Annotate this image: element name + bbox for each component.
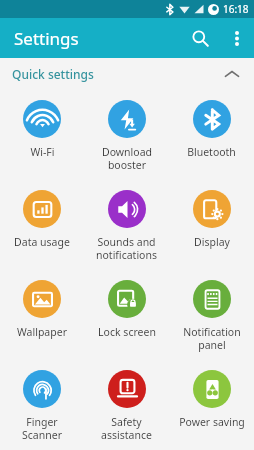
staticText: Display	[194, 235, 230, 249]
staticText: Settings	[14, 27, 79, 50]
staticText: Quick settings	[12, 66, 94, 82]
staticText: 16:18	[223, 2, 249, 16]
button[interactable]: More options	[220, 21, 254, 55]
button[interactable]: Data usage	[0, 180, 84, 270]
staticText: Notification panel	[183, 325, 241, 352]
staticText: Sounds and notifications	[96, 235, 157, 262]
staticText: Safety assistance	[101, 415, 152, 442]
button[interactable]: Search	[180, 18, 220, 58]
button[interactable]: Notification panel	[169, 270, 254, 360]
button[interactable]: Download booster	[84, 90, 169, 180]
button[interactable]: Lock screen	[84, 270, 169, 360]
staticText: Power saving	[179, 415, 245, 429]
button[interactable]: Display	[169, 180, 254, 270]
button[interactable]: Power saving	[169, 360, 254, 450]
button[interactable]: Safety assistance	[84, 360, 169, 450]
button[interactable]: Sounds and notifications	[84, 180, 169, 270]
staticText: Wallpaper	[17, 325, 67, 339]
staticText: Download booster	[102, 145, 152, 172]
button[interactable]: Quick settings	[0, 58, 254, 90]
staticText: Finger Scanner	[22, 415, 62, 442]
button[interactable]: Wallpaper	[0, 270, 84, 360]
staticText: Bluetooth	[187, 145, 236, 159]
button[interactable]: Finger Scanner	[0, 360, 84, 450]
staticText: Data usage	[14, 235, 70, 249]
staticText: Wi-Fi	[30, 145, 55, 159]
button[interactable]: Wi-Fi	[0, 90, 84, 180]
staticText: Lock screen	[98, 325, 156, 339]
button[interactable]: Bluetooth	[169, 90, 254, 180]
